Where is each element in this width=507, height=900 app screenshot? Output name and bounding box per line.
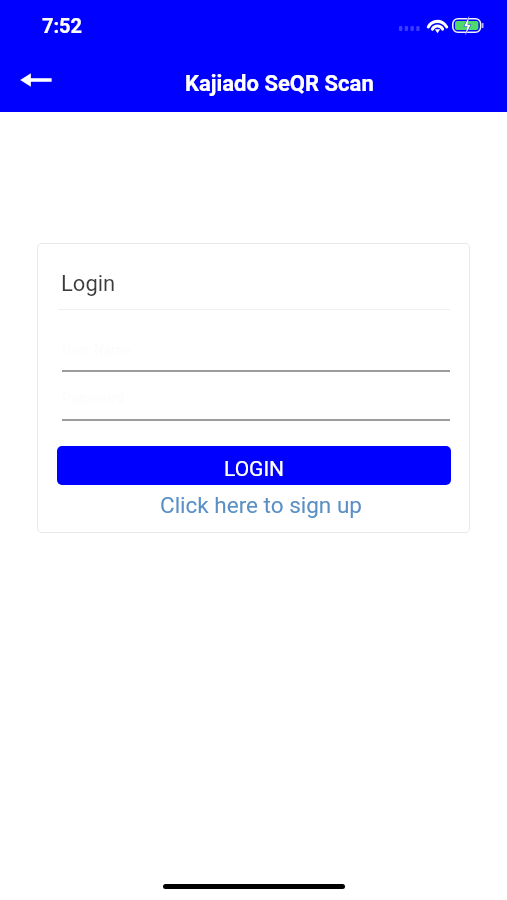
staticText: Login [61,271,116,297]
staticText: 7:52 [42,14,83,37]
staticText: LOGIN [224,457,285,482]
button[interactable]: Back [12,56,60,104]
button[interactable]: Click here to sign up [44,487,470,523]
button[interactable]: Password [62,382,450,422]
staticText: Kajiado SeQR Scan [185,71,374,97]
button[interactable]: LOGIN [57,446,451,485]
button[interactable]: User Name [62,334,450,374]
staticText: Click here to sign up [160,492,362,518]
